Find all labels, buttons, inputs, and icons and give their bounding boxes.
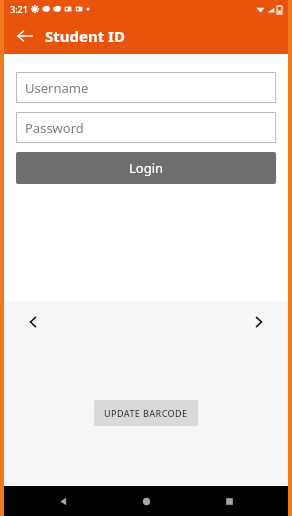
staticText: UPDATE BARCODE [104,407,188,419]
button[interactable]: UPDATE BARCODE [94,400,198,426]
staticText: 3:21 [10,3,28,15]
button[interactable]: Back [50,488,76,514]
button[interactable]: Previous [18,307,48,337]
staticText: Login [129,159,164,177]
button[interactable]: Username [16,72,276,103]
button[interactable]: Recents [216,488,242,514]
staticText: Password [25,119,84,137]
button[interactable]: Next [244,307,274,337]
staticText: Username [25,79,89,97]
button[interactable]: Back [12,23,38,49]
button[interactable]: Home [133,488,159,514]
staticText: Student ID [45,26,125,46]
button[interactable]: Login [16,152,276,184]
button[interactable]: Password [16,112,276,143]
